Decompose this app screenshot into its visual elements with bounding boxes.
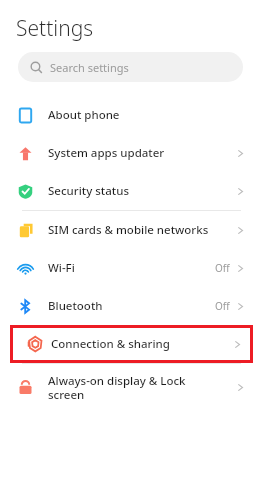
staticText: Connection & sharing [51, 336, 233, 352]
button[interactable]: About phone [0, 96, 261, 134]
staticText: About phone [48, 107, 245, 123]
staticText: Off [215, 299, 230, 313]
staticText: SIM cards & mobile networks [48, 222, 236, 238]
button[interactable]: Bluetooth [0, 287, 261, 325]
button[interactable]: System apps updater [0, 134, 261, 172]
staticText: Bluetooth [48, 298, 215, 314]
staticText: System apps updater [48, 145, 236, 161]
staticText: Off [215, 261, 230, 275]
staticText: Always-on display & Lock screen [48, 373, 218, 402]
button[interactable]: Security status [0, 172, 261, 210]
button[interactable]: SIM cards & mobile networks [0, 211, 261, 249]
button[interactable]: Wi-Fi [0, 249, 261, 287]
staticText: Search settings [50, 60, 129, 75]
button[interactable]: Always-on display & Lock screen [0, 364, 261, 410]
button[interactable]: Connection & sharing [13, 328, 250, 360]
staticText: Security status [48, 183, 236, 199]
staticText: Wi-Fi [48, 260, 215, 276]
staticText: Settings [16, 14, 94, 43]
button[interactable]: Search settings [18, 52, 243, 82]
